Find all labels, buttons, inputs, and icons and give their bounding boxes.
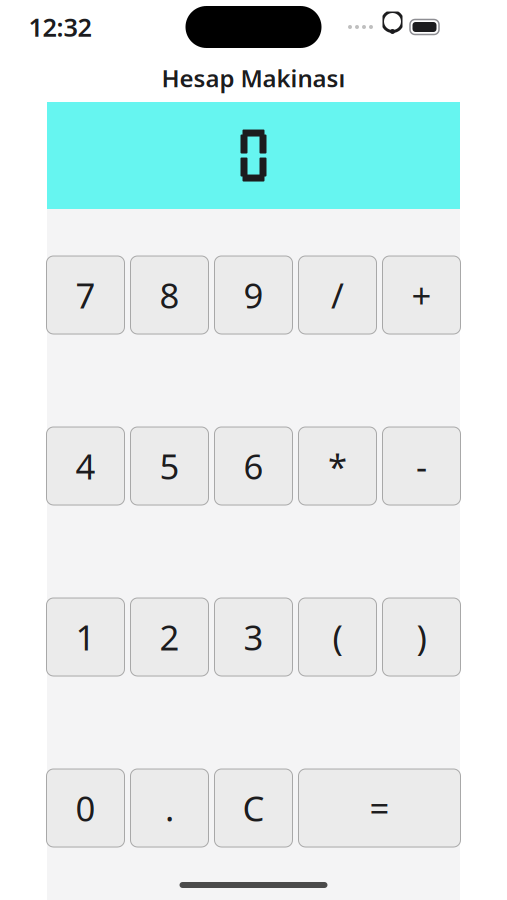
staticText: ) <box>416 614 426 660</box>
staticText: * <box>328 443 347 489</box>
staticText: + <box>411 272 431 318</box>
staticText: 12:32 <box>28 10 91 44</box>
button[interactable]: + <box>382 256 460 334</box>
button[interactable]: - <box>382 427 460 505</box>
button[interactable]: = <box>298 769 460 847</box>
button[interactable]: C <box>214 769 292 847</box>
staticText: = <box>369 785 389 831</box>
button[interactable]: 9 <box>214 256 292 334</box>
button[interactable]: * <box>298 427 376 505</box>
staticText: 5 <box>159 443 179 489</box>
staticText: . <box>165 785 174 831</box>
button[interactable]: 0 <box>46 769 124 847</box>
button[interactable]: . <box>130 769 208 847</box>
staticText: - <box>416 443 427 489</box>
staticText: 8 <box>159 272 179 318</box>
button[interactable]: 4 <box>46 427 124 505</box>
staticText: 7 <box>75 272 95 318</box>
staticText: Hesap Makinası <box>161 62 345 94</box>
button[interactable]: 1 <box>46 598 124 676</box>
staticText: / <box>331 272 344 318</box>
staticText: 9 <box>243 272 263 318</box>
button[interactable]: 8 <box>130 256 208 334</box>
button[interactable]: 5 <box>130 427 208 505</box>
staticText: 1 <box>75 614 95 660</box>
staticText: 6 <box>243 443 263 489</box>
staticText: C <box>242 785 264 831</box>
button[interactable]: ( <box>298 598 376 676</box>
staticText: ( <box>332 614 342 660</box>
button[interactable]: ) <box>382 598 460 676</box>
button[interactable]: 3 <box>214 598 292 676</box>
button[interactable]: / <box>298 256 376 334</box>
button[interactable]: 6 <box>214 427 292 505</box>
staticText: 2 <box>159 614 179 660</box>
button[interactable]: 2 <box>130 598 208 676</box>
staticText: 3 <box>243 614 263 660</box>
button[interactable]: 7 <box>46 256 124 334</box>
staticText: 4 <box>75 443 95 489</box>
staticText: 0 <box>75 785 95 831</box>
